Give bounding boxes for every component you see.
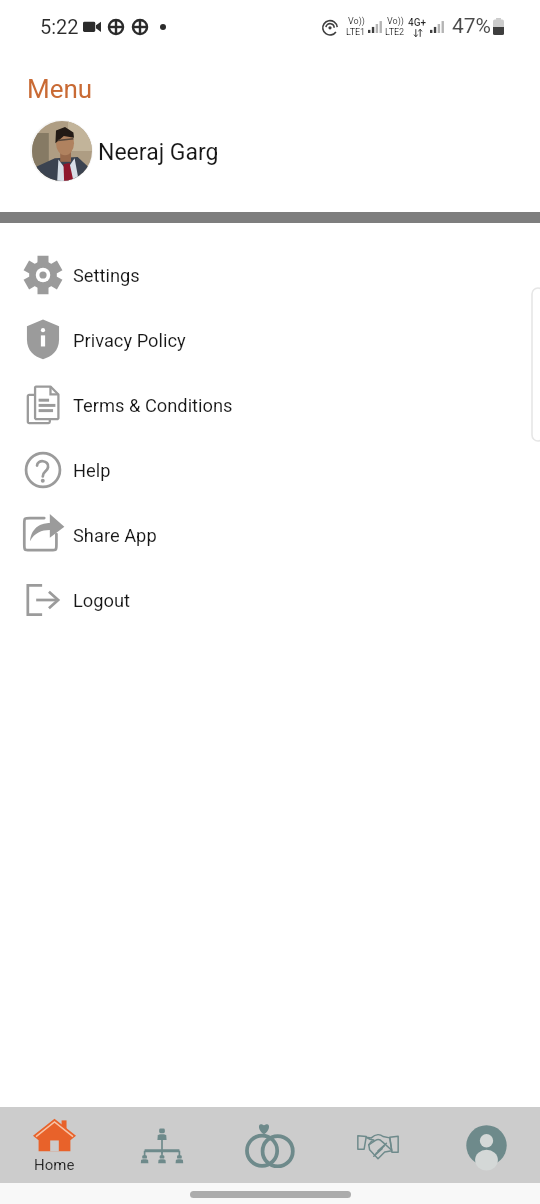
staticText: 5:22: [40, 15, 79, 38]
button[interactable]: Matrimony: [216, 1107, 324, 1183]
staticText: Terms & Conditions: [73, 395, 233, 416]
button[interactable]: Profile: [432, 1107, 540, 1183]
button[interactable]: Share App: [0, 502, 540, 567]
staticText: Help: [73, 460, 111, 481]
button[interactable]: Menu: [27, 74, 93, 104]
staticText: Neeraj Garg: [98, 139, 219, 166]
button[interactable]: Settings: [0, 242, 540, 307]
staticText: 4G+: [408, 17, 427, 29]
button[interactable]: Neeraj Garg: [0, 119, 540, 181]
staticText: Settings: [73, 265, 140, 286]
staticText: Logout: [73, 590, 131, 611]
button[interactable]: Home: [0, 1107, 108, 1183]
staticText: LTE2: [385, 27, 405, 38]
button[interactable]: Family tree: [108, 1107, 216, 1183]
staticText: 47%: [452, 14, 491, 39]
button[interactable]: Logout: [0, 567, 540, 632]
staticText: Vo)): [348, 16, 365, 27]
staticText: LTE1: [346, 27, 366, 38]
button[interactable]: Help: [0, 437, 540, 502]
staticText: Share App: [73, 525, 157, 546]
staticText: Menu: [27, 74, 93, 104]
button[interactable]: Privacy Policy: [0, 307, 540, 372]
button[interactable]: Terms & Conditions: [0, 372, 540, 437]
staticText: Home: [34, 1156, 75, 1174]
staticText: Vo)): [387, 16, 404, 27]
button[interactable]: Business network: [324, 1107, 432, 1183]
staticText: Privacy Policy: [73, 330, 186, 351]
